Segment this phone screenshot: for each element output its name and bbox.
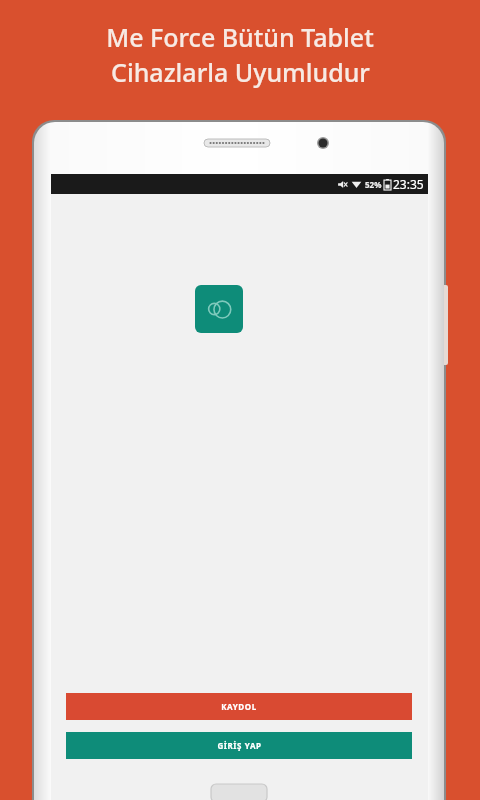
- staticText: Cihazlarla Uyumludur: [111, 55, 370, 89]
- staticText: GİRİŞ YAP: [217, 740, 262, 751]
- button[interactable]: KAYDOL: [66, 693, 412, 720]
- staticText: Me Force Bütün Tablet: [106, 20, 374, 54]
- staticText: KAYDOL: [221, 701, 257, 712]
- button[interactable]: GİRİŞ YAP: [66, 732, 412, 759]
- staticText: 23:35: [393, 176, 424, 192]
- staticText: 52%: [365, 179, 382, 190]
- other: Me Force logo: [195, 285, 243, 333]
